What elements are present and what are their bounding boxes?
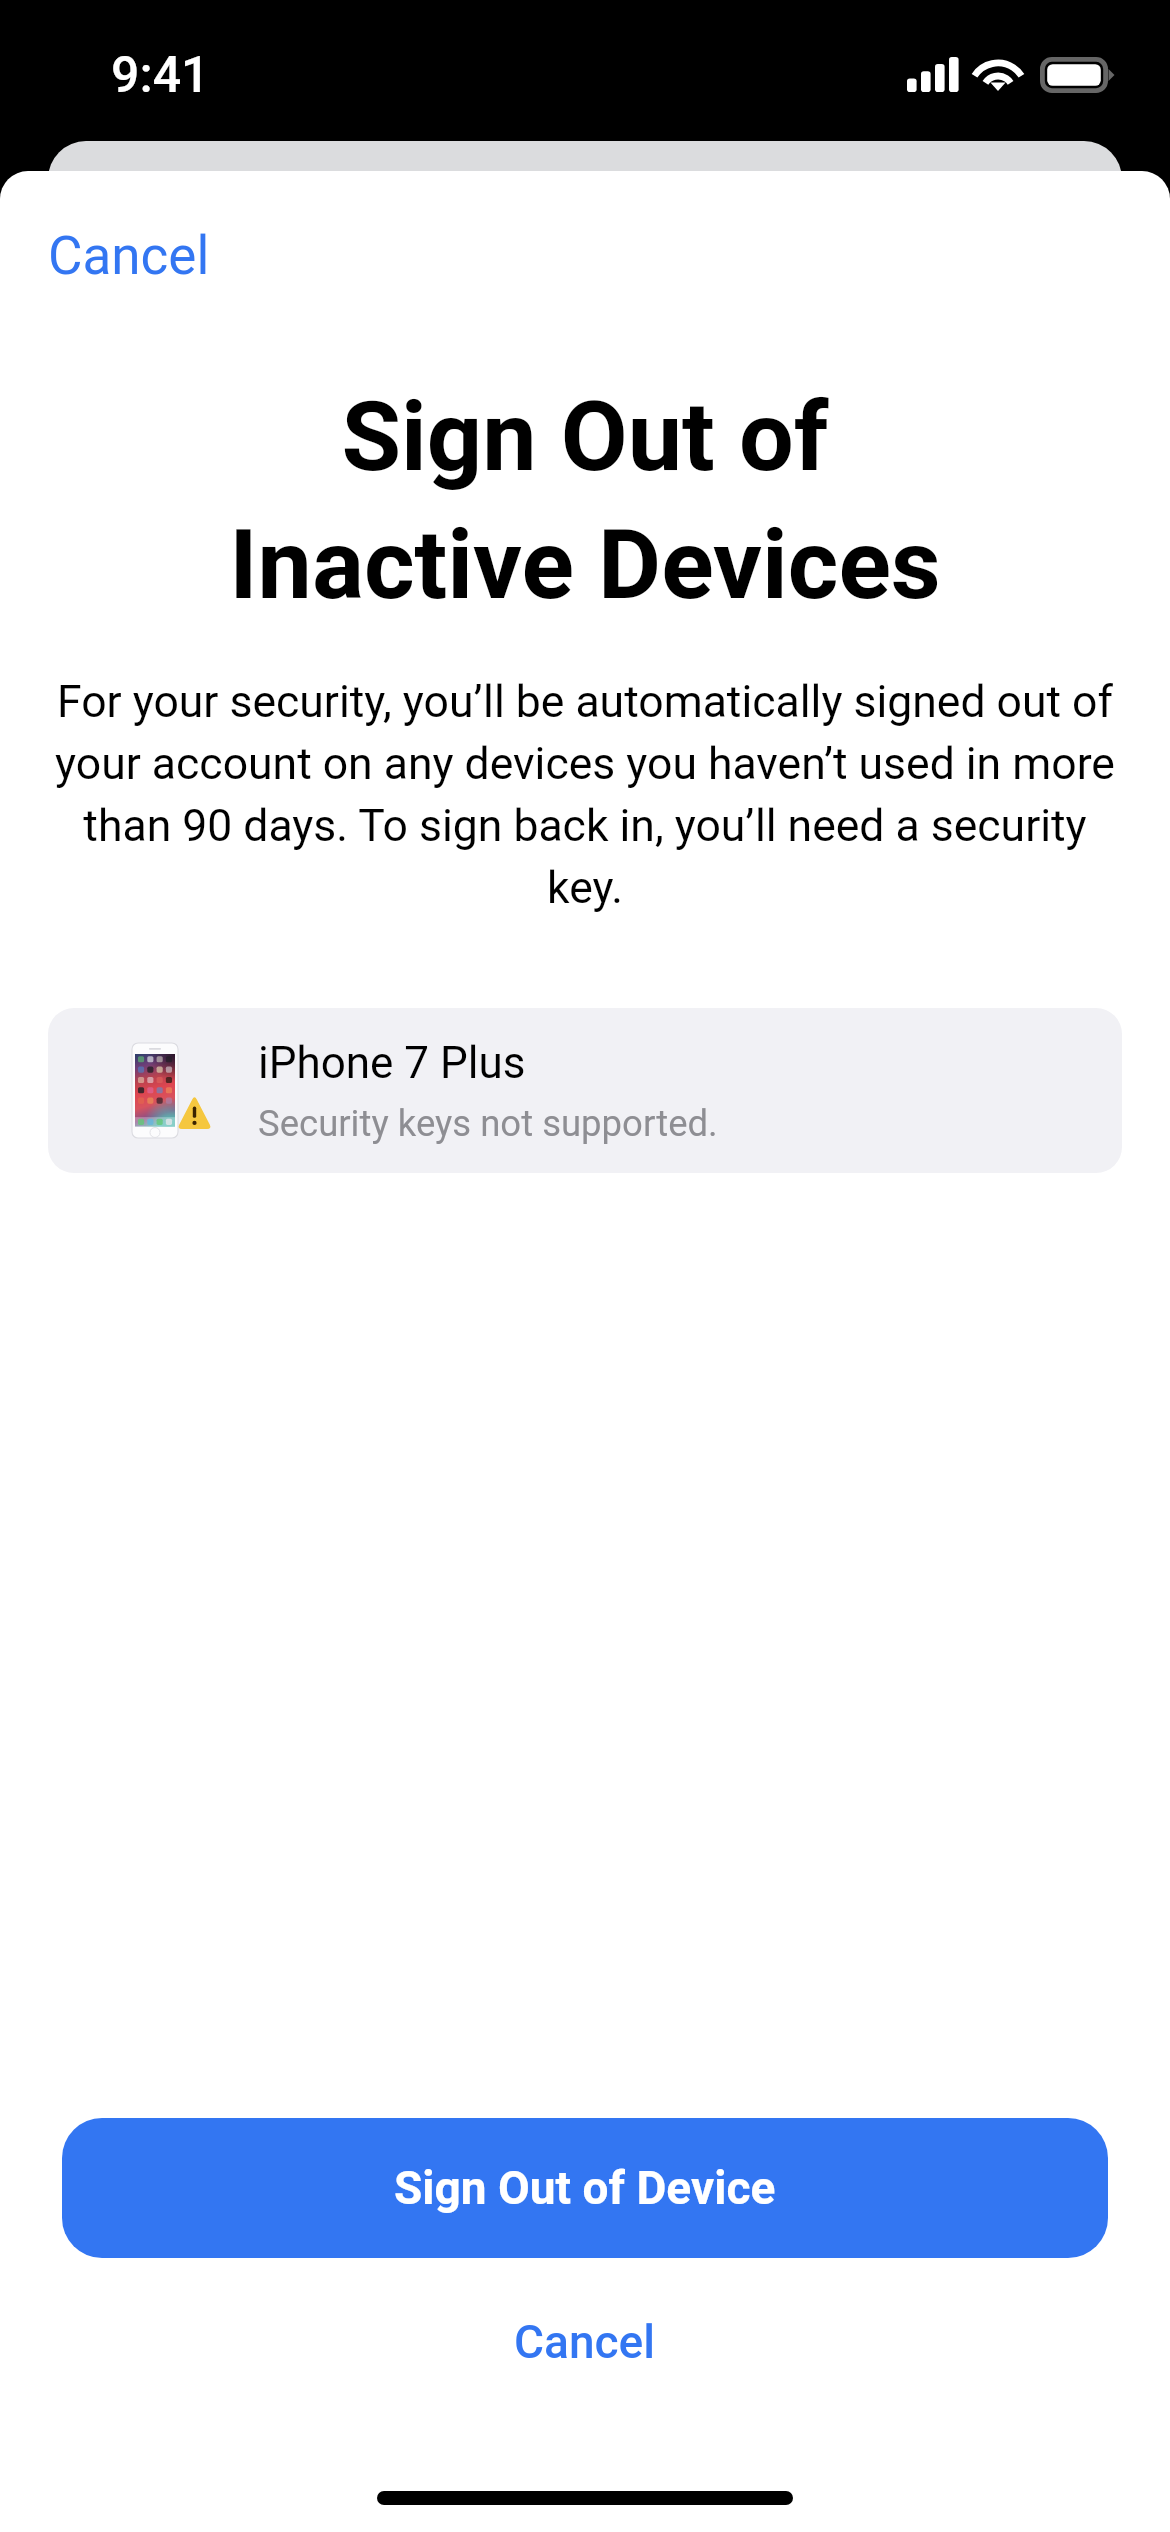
staticText: Sign Out of Inactive Devices <box>0 380 1170 622</box>
staticText: Security keys not supported. <box>258 1102 718 1145</box>
button[interactable]: Cancel <box>0 2293 1170 2391</box>
button[interactable]: Sign Out of Device <box>62 2118 1108 2258</box>
button[interactable]: Cancel <box>25 215 233 297</box>
other: iPhone 7 Plus, security warning <box>132 1042 214 1139</box>
staticText: Cancel <box>48 225 210 287</box>
staticText: Sign Out of Device <box>394 2161 776 2215</box>
button[interactable]: iPhone 7 Plus, security warning <box>48 1008 1122 1173</box>
staticText: 9:41 <box>111 46 210 105</box>
staticText: For your security, you’ll be automatical… <box>50 676 1120 914</box>
staticText: Cancel <box>514 2315 656 2369</box>
staticText: iPhone 7 Plus <box>258 1037 526 1089</box>
